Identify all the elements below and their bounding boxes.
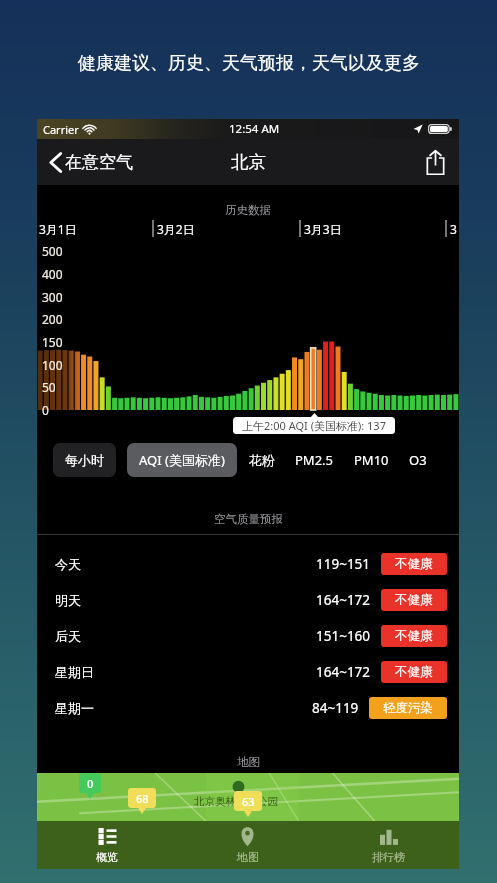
button[interactable]: Share	[417, 144, 453, 180]
staticText: 不健康	[395, 664, 433, 680]
staticText: 空气质量预报	[214, 512, 283, 526]
staticText: 不健康	[395, 556, 433, 572]
button[interactable]: 星期日	[37, 654, 459, 690]
staticText: 星期一	[55, 700, 94, 716]
staticText: 0	[87, 776, 94, 791]
staticText: 151~160	[316, 627, 371, 645]
staticText: 63	[242, 794, 255, 809]
staticText: 200	[42, 311, 63, 327]
staticText: 明天	[55, 592, 81, 608]
staticText: 今天	[55, 556, 81, 572]
staticText: 500	[42, 243, 63, 259]
staticText: 不健康	[395, 592, 433, 608]
staticText: 300	[42, 289, 63, 305]
button[interactable]: PM10	[346, 443, 397, 477]
button[interactable]: 在意空气	[37, 142, 141, 182]
staticText: 地图	[237, 850, 259, 864]
staticText: 星期日	[55, 664, 94, 680]
staticText: 地图	[237, 755, 260, 769]
staticText: 概览	[96, 850, 118, 864]
staticText: AQI (美国标准)	[139, 451, 225, 469]
button[interactable]: 今天	[37, 546, 459, 582]
staticText: 119~151	[316, 555, 371, 573]
button[interactable]: 地图	[177, 821, 318, 869]
button[interactable]: 明天	[37, 582, 459, 618]
staticText: 3月1日	[39, 221, 77, 237]
staticText: 轻度污染	[383, 700, 433, 716]
staticText: 150	[42, 334, 63, 350]
staticText: 3月2日	[157, 221, 195, 237]
button[interactable]: 每小时	[53, 443, 116, 477]
staticText: 上午2:00 AQI (美国标准): 137	[242, 418, 386, 433]
button[interactable]: AQI (美国标准)	[127, 443, 237, 477]
button[interactable]: 花粉	[241, 443, 283, 477]
button[interactable]: 星期一	[37, 690, 459, 726]
staticText: 北京奥林匹克公园	[194, 795, 278, 808]
staticText: Carrier	[43, 122, 79, 137]
staticText: 花粉	[249, 452, 275, 468]
staticText: 0	[42, 402, 49, 418]
staticText: 84~119	[312, 699, 359, 717]
button[interactable]: PM2.5	[287, 443, 342, 477]
button[interactable]: 概览	[37, 821, 177, 869]
staticText: 3	[450, 221, 457, 237]
staticText: 68	[136, 791, 149, 806]
staticText: 在意空气	[65, 152, 133, 173]
staticText: 12:54 AM	[229, 121, 280, 137]
staticText: 历史数据	[225, 203, 271, 217]
staticText: 50	[42, 379, 56, 395]
staticText: PM10	[354, 451, 389, 469]
staticText: 不健康	[395, 628, 433, 644]
staticText: 3月3日	[304, 221, 342, 237]
staticText: 后天	[55, 628, 81, 644]
button[interactable]: 后天	[37, 618, 459, 654]
staticText: 北京	[231, 151, 266, 173]
staticText: 164~172	[316, 591, 371, 609]
staticText: O3	[409, 451, 427, 469]
staticText: 健康建议、历史、天气预报，天气以及更多	[78, 52, 420, 75]
staticText: 164~172	[316, 663, 371, 681]
button[interactable]: O3	[401, 443, 435, 477]
staticText: 每小时	[65, 452, 104, 468]
staticText: 100	[42, 357, 63, 373]
staticText: 400	[42, 266, 63, 282]
button[interactable]: 排行榜	[318, 821, 459, 869]
staticText: PM2.5	[295, 451, 334, 469]
staticText: 排行榜	[372, 850, 405, 864]
